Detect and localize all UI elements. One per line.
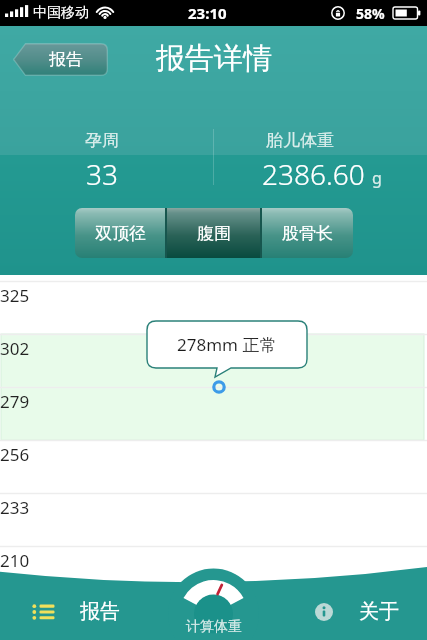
- button[interactable]: 腹围: [167, 208, 260, 258]
- staticText: 279: [0, 390, 30, 413]
- staticText: 关于: [359, 599, 399, 624]
- button[interactable]: 股骨长: [262, 208, 353, 258]
- staticText: 58%: [356, 4, 385, 23]
- staticText: g: [372, 167, 382, 189]
- staticText: 报告: [80, 599, 120, 624]
- staticText: 210: [0, 549, 30, 572]
- staticText: 302: [0, 337, 30, 360]
- staticText: 孕周: [85, 130, 119, 151]
- staticText: 中国移动: [33, 4, 89, 22]
- staticText: 23:10: [188, 3, 227, 23]
- staticText: 33: [86, 155, 118, 193]
- button[interactable]: 返回 报告: [12, 43, 108, 76]
- staticText: 胎儿体重: [266, 130, 334, 151]
- staticText: 股骨长: [282, 223, 333, 244]
- staticText: 计算体重: [186, 618, 242, 636]
- staticText: 2386.60: [262, 155, 365, 193]
- staticText: 278mm 正常: [177, 333, 277, 356]
- staticText: 256: [0, 443, 30, 466]
- button[interactable]: 报告: [26, 594, 126, 629]
- staticText: 报告: [49, 49, 83, 70]
- staticText: 报告详情: [156, 40, 272, 77]
- button[interactable]: 双顶径: [75, 208, 165, 258]
- staticText: 233: [0, 496, 30, 519]
- button[interactable]: 关于: [309, 594, 405, 629]
- staticText: 腹围: [197, 223, 231, 244]
- staticText: 325: [0, 284, 30, 307]
- staticText: 双顶径: [95, 223, 146, 244]
